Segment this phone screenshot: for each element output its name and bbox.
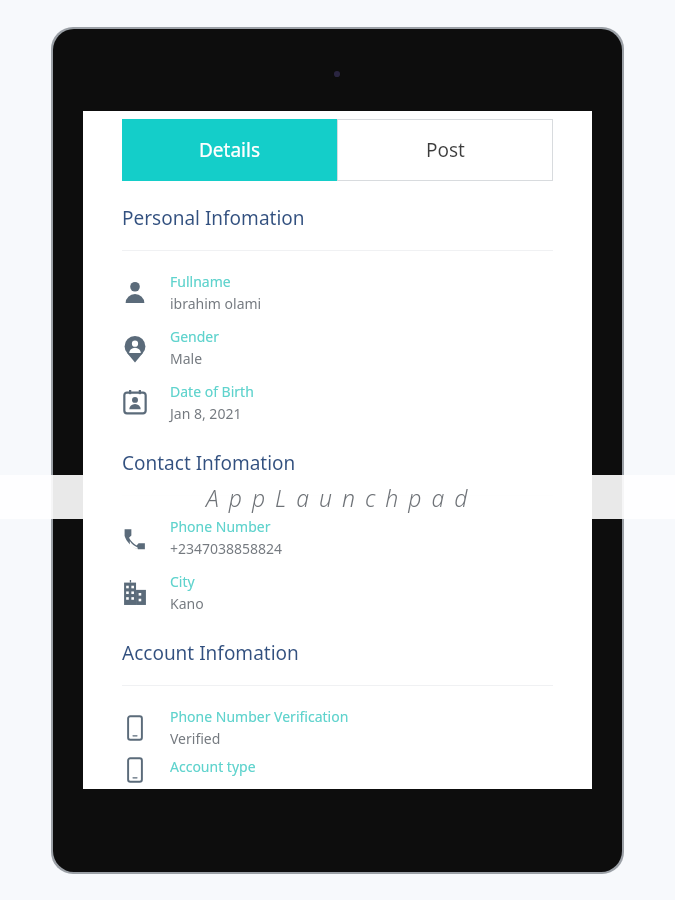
button[interactable]: Phone Number — [83, 512, 592, 567]
staticText: +2347038858824 — [170, 539, 283, 558]
other: Phone Number Verification — [122, 715, 148, 741]
button[interactable]: City — [83, 567, 592, 622]
button[interactable]: Post — [337, 119, 553, 181]
staticText: Jan 8, 2021 — [170, 404, 242, 423]
staticText: Personal Infomation — [122, 205, 305, 231]
staticText: Post — [426, 137, 465, 163]
staticText: Date of Birth — [170, 382, 254, 401]
button[interactable]: Date of Birth — [83, 377, 592, 432]
button[interactable]: Phone Number Verification — [83, 702, 592, 757]
staticText: Verified — [170, 729, 221, 748]
button[interactable]: Gender — [83, 322, 592, 377]
staticText: Male — [170, 349, 203, 368]
staticText: A p p L a u n c h p a d — [206, 482, 470, 513]
staticText: Gender — [170, 327, 220, 346]
staticText: Kano — [170, 594, 204, 613]
staticText: Phone Number Verification — [170, 707, 349, 726]
staticText: Account type — [170, 757, 256, 776]
button[interactable]: Fullname — [83, 267, 592, 322]
button[interactable]: Details — [122, 119, 337, 181]
other: Fullname — [122, 280, 148, 306]
other: Phone Number — [122, 525, 148, 551]
other: Gender — [122, 335, 148, 361]
staticText: Phone Number — [170, 517, 271, 536]
other: Date of Birth — [122, 390, 148, 416]
staticText: Fullname — [170, 272, 231, 291]
staticText: Details — [199, 137, 261, 163]
other: City — [122, 580, 148, 606]
staticText: ibrahim olami — [170, 294, 262, 313]
staticText: City — [170, 572, 195, 591]
staticText: Contact Infomation — [122, 450, 296, 476]
staticText: Account Infomation — [122, 640, 299, 666]
